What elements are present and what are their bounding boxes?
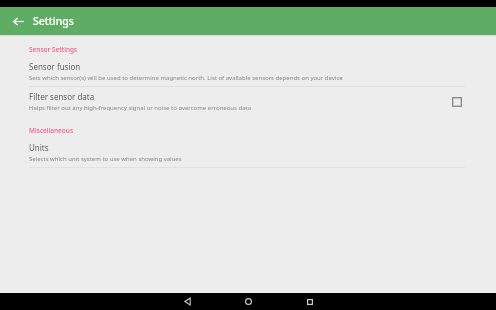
- button[interactable]: Back: [179, 293, 196, 310]
- staticText: Sets which sensor(s) will be used to det…: [29, 74, 343, 82]
- staticText: Settings: [33, 14, 74, 28]
- button[interactable]: Navigate up: [9, 12, 27, 30]
- staticText: Sensor fusion: [29, 61, 81, 72]
- staticText: Units: [29, 142, 49, 153]
- staticText: Filter sensor data: [29, 91, 95, 102]
- button[interactable]: Recent apps: [301, 293, 318, 310]
- button[interactable]: Filter sensor data: [0, 87, 496, 116]
- staticText: Helps filter out any high-frequency sign…: [29, 104, 252, 112]
- staticText: Miscellaneous: [29, 126, 74, 135]
- button[interactable]: Filter sensor data checkbox: [449, 94, 465, 110]
- button[interactable]: Sensor fusion: [0, 57, 496, 86]
- staticText: Selects which unit system to use when sh…: [29, 155, 182, 163]
- staticText: Sensor Settings: [29, 45, 78, 54]
- button[interactable]: Units: [0, 138, 496, 167]
- button[interactable]: Home: [240, 293, 257, 310]
